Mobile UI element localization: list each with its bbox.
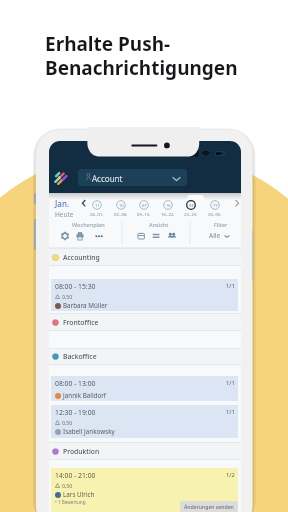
- staticText: Ansicht: [149, 221, 169, 229]
- staticText: 1/1: [226, 282, 235, 290]
- staticText: Isabell Jankowsky: [63, 427, 115, 436]
- staticText: Alle: [209, 231, 221, 240]
- staticText: 1/2: [226, 471, 235, 479]
- button[interactable]: People view: [167, 231, 177, 241]
- button[interactable]: Alle: [209, 231, 230, 240]
- button[interactable]: 07: [139, 200, 149, 210]
- staticText: 1/1: [226, 408, 235, 416]
- staticText: 16: [166, 203, 171, 208]
- button[interactable]: List view: [151, 231, 161, 241]
- staticText: 0,50: [62, 482, 73, 489]
- staticText: Account: [92, 173, 123, 184]
- staticText: 09.-15.: [137, 211, 151, 217]
- button[interactable]: 03: [186, 200, 196, 210]
- button[interactable]: Previous week: [79, 198, 89, 208]
- button[interactable]: Produktion: [49, 442, 241, 460]
- button[interactable]: Backoffice: [49, 348, 241, 365]
- button[interactable]: Accounting: [49, 248, 241, 266]
- button[interactable]: 08:00 - 15:30: [51, 279, 238, 311]
- button[interactable]: Settings: [60, 231, 70, 241]
- staticText: Jan.: [55, 198, 70, 209]
- button[interactable]: 12:30 - 19:00: [51, 405, 238, 438]
- staticText: 0,50: [62, 419, 73, 426]
- staticText: Änderungen senden: [184, 503, 234, 510]
- staticText: Filter: [214, 221, 228, 229]
- staticText: 08:00 - 15:30: [55, 282, 96, 291]
- button[interactable]: Next week: [232, 198, 241, 208]
- staticText: 26.-01.: [90, 211, 104, 217]
- staticText: 0,50: [62, 293, 73, 300]
- staticText: 30.-05.: [208, 211, 222, 217]
- button[interactable]: Grid view: [136, 231, 146, 241]
- staticText: 1/1: [226, 379, 235, 387]
- button[interactable]: 11: [92, 200, 102, 210]
- staticText: Jannik Balldorf: [63, 391, 106, 400]
- button[interactable]: More options: [94, 231, 104, 241]
- staticText: 16.-22.: [161, 211, 175, 217]
- button[interactable]: Änderungen senden: [180, 501, 238, 512]
- button[interactable]: Print: [75, 231, 85, 241]
- staticText: 11: [95, 203, 100, 208]
- staticText: 10: [119, 203, 124, 208]
- staticText: 08:00 - 13:00: [55, 379, 96, 388]
- staticText: 14:00 - 21:00: [55, 471, 96, 480]
- staticText: Produktion: [63, 447, 100, 456]
- button[interactable]: Frontoffice: [49, 313, 241, 331]
- staticText: Barbara Müller: [63, 301, 108, 310]
- staticText: Erhalte Push- Benachrichtigungen: [45, 31, 238, 80]
- button[interactable]: 16: [163, 200, 173, 210]
- staticText: 12:30 - 19:00: [55, 408, 96, 417]
- button[interactable]: 08:00 - 13:00: [51, 376, 238, 401]
- staticText: Frontoffice: [63, 318, 99, 327]
- button[interactable]: 77: [210, 200, 220, 210]
- staticText: Lars Ulrich: [63, 490, 95, 499]
- staticText: 77: [213, 203, 218, 208]
- staticText: 02.-08.: [114, 211, 128, 217]
- button[interactable]: App logo: [53, 171, 68, 186]
- staticText: Accounting: [63, 253, 100, 262]
- staticText: 03: [189, 203, 194, 208]
- staticText: 07: [142, 203, 147, 208]
- staticText: Backoffice: [63, 352, 97, 361]
- staticText: 23.-29.: [184, 211, 198, 217]
- staticText: • 1 Bewertung: [55, 499, 86, 505]
- staticText: Wochenplan: [72, 221, 105, 229]
- button[interactable]: 10: [116, 200, 126, 210]
- button[interactable]: Account: [78, 169, 187, 186]
- button[interactable]: 14:00 - 21:00: [51, 468, 238, 512]
- staticText: Heute: [55, 210, 74, 219]
